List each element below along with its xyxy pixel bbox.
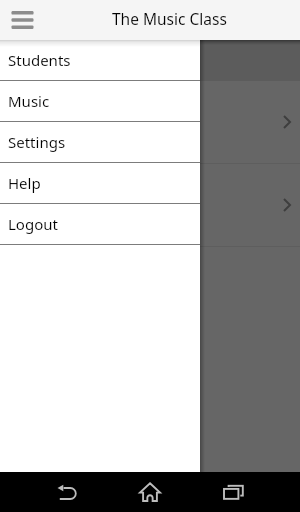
button[interactable]: Students: [0, 40, 200, 80]
staticText: The Music Class: [112, 8, 227, 29]
button[interactable]: Help: [0, 163, 200, 203]
button[interactable]: Recent apps: [209, 472, 257, 512]
button[interactable]: [0, 81, 300, 164]
staticText: Music: [8, 91, 50, 111]
button[interactable]: Settings: [0, 122, 200, 162]
button[interactable]: Music: [0, 81, 200, 121]
button[interactable]: Logout: [0, 204, 200, 244]
button[interactable]: Back: [43, 472, 91, 512]
staticText: Help: [8, 173, 41, 193]
staticText: Students: [8, 50, 71, 70]
button[interactable]: Home: [126, 472, 174, 512]
staticText: Logout: [8, 214, 58, 234]
button[interactable]: Open navigation drawer: [5, 3, 39, 37]
button[interactable]: [0, 164, 300, 247]
staticText: Settings: [8, 132, 66, 152]
